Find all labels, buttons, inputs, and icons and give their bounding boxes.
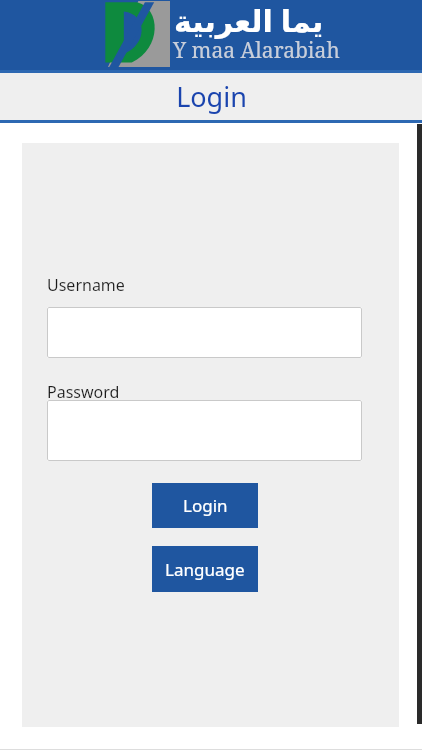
staticText: Language	[165, 558, 245, 581]
staticText: يما العربية	[174, 0, 324, 41]
button[interactable]	[47, 307, 362, 358]
staticText: Login	[176, 78, 247, 115]
staticText: Login	[183, 494, 228, 517]
staticText: Password	[47, 381, 120, 403]
staticText: Y maa Alarabiah	[173, 36, 340, 65]
button[interactable]: Login	[152, 483, 258, 528]
button[interactable]: Language	[152, 546, 258, 592]
staticText: Username	[47, 274, 125, 296]
button[interactable]	[47, 400, 362, 461]
